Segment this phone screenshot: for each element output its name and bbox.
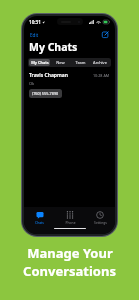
staticText: 10:31 bbox=[29, 19, 41, 25]
staticText: Chats bbox=[35, 220, 44, 224]
button[interactable]: Settings bbox=[85, 207, 115, 228]
staticText: Team bbox=[75, 60, 86, 65]
staticText: Settings bbox=[94, 220, 107, 224]
button[interactable]: Archive bbox=[90, 59, 110, 66]
staticText: Archive bbox=[93, 60, 107, 65]
button[interactable]: Team bbox=[70, 59, 90, 66]
staticText: Edit bbox=[30, 32, 39, 38]
button[interactable]: New message bbox=[101, 30, 110, 39]
button[interactable]: Phone bbox=[55, 207, 85, 228]
staticText: New bbox=[56, 60, 65, 65]
button[interactable]: My Chats bbox=[29, 59, 50, 66]
button[interactable]: Edit bbox=[29, 31, 40, 39]
staticText: Manage Your bbox=[27, 244, 113, 262]
staticText: (760) 555-7890 bbox=[32, 91, 59, 96]
staticText: Travis Chapman bbox=[29, 72, 68, 79]
staticText: 10:28 AM bbox=[93, 73, 110, 78]
button[interactable]: Travis Chapman bbox=[24, 72, 115, 98]
button[interactable]: New bbox=[50, 59, 70, 66]
staticText: My Chats bbox=[29, 40, 78, 54]
staticText: Phone bbox=[65, 220, 76, 224]
staticText: Ok bbox=[29, 81, 35, 86]
button[interactable]: Chats bbox=[24, 207, 55, 228]
staticText: Conversations bbox=[23, 262, 116, 280]
staticText: My Chats bbox=[31, 60, 49, 65]
